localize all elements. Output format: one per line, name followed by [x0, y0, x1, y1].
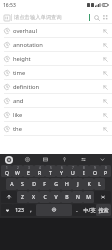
button[interactable]: Hide keyboard — [93, 154, 112, 165]
staticText: annotation — [13, 41, 43, 49]
button[interactable]: 7 — [67, 165, 78, 177]
button[interactable]: 中/英 — [82, 204, 96, 216]
button[interactable]: B — [61, 191, 72, 203]
button[interactable]: Fill in definition — [101, 83, 109, 91]
button[interactable]: Fill in and — [101, 97, 109, 105]
button[interactable]: Fill in the — [101, 125, 109, 133]
button[interactable]: and — [0, 94, 112, 108]
button[interactable]: C — [39, 191, 50, 203]
button[interactable]: , — [26, 204, 36, 216]
button[interactable]: Clipboard — [36, 154, 55, 165]
staticText: 4 — [39, 166, 41, 170]
staticText: , — [30, 207, 32, 214]
button[interactable]: More options — [101, 13, 110, 22]
staticText: X — [32, 194, 35, 201]
button[interactable]: 4 — [34, 165, 45, 177]
staticText: D — [32, 181, 36, 188]
button[interactable]: Fill in like — [101, 111, 109, 119]
button[interactable]: Keyboard settings — [74, 154, 93, 165]
button[interactable]: Fill in annotation — [101, 41, 109, 49]
button[interactable]: M — [83, 191, 94, 203]
staticText: O — [93, 170, 97, 177]
staticText: the — [13, 125, 22, 133]
button[interactable]: F — [39, 178, 50, 190]
button[interactable]: H — [61, 178, 72, 190]
button[interactable]: S — [17, 178, 28, 190]
button[interactable]: . — [72, 204, 82, 216]
button[interactable]: L — [94, 178, 105, 190]
button[interactable]: like — [0, 108, 112, 122]
button[interactable]: K — [83, 178, 94, 190]
button[interactable]: Search — [92, 13, 101, 22]
staticText: C — [43, 194, 47, 201]
button[interactable]: definition — [0, 80, 112, 94]
button[interactable]: Input method — [0, 154, 18, 165]
button[interactable]: 5 — [45, 165, 56, 177]
button[interactable]: overhaul — [0, 24, 112, 38]
button[interactable]: the — [0, 122, 112, 136]
staticText: 9 — [94, 166, 96, 170]
button[interactable]: V — [50, 191, 61, 203]
button[interactable]: N — [72, 191, 83, 203]
button[interactable]: A — [6, 178, 17, 190]
button[interactable]: Fill in height — [101, 55, 109, 63]
staticText: 2 — [17, 166, 19, 170]
staticText: J — [77, 181, 79, 188]
button[interactable]: time — [0, 66, 112, 80]
staticText: T — [49, 170, 52, 177]
staticText: and — [13, 97, 24, 105]
button[interactable]: 3 — [23, 165, 34, 177]
button[interactable]: Shift — [1, 191, 17, 203]
button[interactable]: 1 — [1, 165, 12, 177]
staticText: 0 — [105, 166, 107, 170]
staticText: 8 — [83, 166, 85, 170]
staticText: 3 — [28, 166, 30, 170]
button[interactable]: Scan word — [2, 13, 11, 22]
staticText: definition — [13, 83, 40, 91]
staticText: 16:53 — [3, 2, 16, 9]
button[interactable]: Fill in time — [101, 69, 109, 77]
staticText: Z — [21, 194, 24, 201]
staticText: B — [65, 194, 69, 201]
staticText: height — [13, 55, 31, 63]
staticText: 123 — [15, 207, 24, 214]
button[interactable]: Emoji — [1, 204, 13, 216]
staticText: overhaul — [13, 27, 37, 35]
button[interactable]: Settings — [18, 154, 36, 165]
button[interactable]: G — [50, 178, 61, 190]
staticText: R — [38, 170, 42, 177]
staticText: 搜索 — [98, 207, 109, 213]
staticText: A — [10, 181, 14, 188]
button[interactable]: X — [28, 191, 39, 203]
button[interactable]: Voice input — [55, 154, 74, 165]
button[interactable]: 123 — [13, 204, 26, 216]
staticText: H — [65, 181, 69, 188]
button[interactable]: 9 — [89, 165, 100, 177]
staticText: L — [98, 181, 101, 188]
button[interactable]: annotation — [0, 38, 112, 52]
button[interactable]: height — [0, 52, 112, 66]
button[interactable]: Backspace — [94, 191, 111, 203]
button[interactable]: J — [72, 178, 83, 190]
staticText: K — [87, 181, 91, 188]
button[interactable]: 请点击输入单词查询 — [14, 14, 89, 21]
staticText: P — [104, 170, 108, 177]
button[interactable]: 2 — [12, 165, 23, 177]
button[interactable]: 搜索 — [96, 204, 111, 216]
staticText: S — [21, 181, 24, 188]
staticText: V — [54, 194, 58, 201]
staticText: 1 — [6, 166, 8, 170]
button[interactable]: Space — [36, 204, 72, 216]
staticText: Q — [5, 170, 9, 177]
staticText: 6 — [61, 166, 63, 170]
staticText: F — [43, 181, 46, 188]
button[interactable]: Z — [17, 191, 28, 203]
staticText: . — [76, 207, 78, 214]
staticText: E — [27, 170, 30, 177]
button[interactable]: Fill in overhaul — [101, 27, 109, 35]
button[interactable]: 0 — [100, 165, 111, 177]
button[interactable]: 6 — [56, 165, 67, 177]
staticText: 5 — [50, 166, 52, 170]
button[interactable]: D — [28, 178, 39, 190]
button[interactable]: 8 — [78, 165, 89, 177]
